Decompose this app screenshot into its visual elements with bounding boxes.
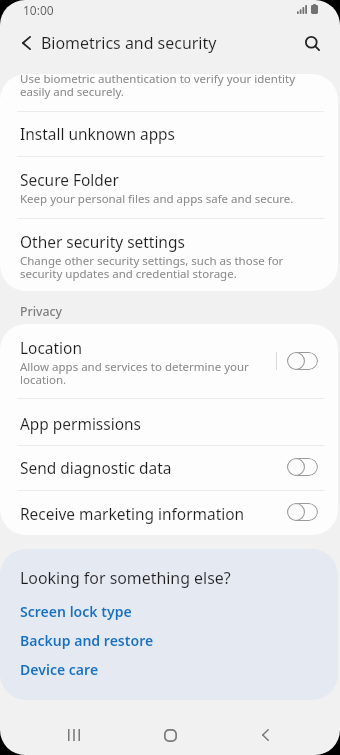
staticText: Location — [20, 337, 82, 358]
staticText: Device care — [20, 660, 99, 679]
button[interactable]: Search — [294, 25, 330, 61]
button[interactable]: Navigate up — [8, 25, 44, 61]
button[interactable] — [0, 490, 338, 535]
staticText: Biometrics and security — [41, 32, 217, 54]
staticText: Privacy — [20, 303, 63, 320]
staticText: Allow apps and services to determine you… — [20, 359, 249, 388]
button[interactable]: Home — [152, 717, 188, 753]
button[interactable]: Switch, off — [287, 503, 318, 521]
staticText: Screen lock type — [20, 602, 132, 621]
staticText: Other security settings — [20, 231, 185, 252]
button[interactable] — [0, 156, 338, 217]
button[interactable]: Screen lock type — [20, 602, 132, 621]
button[interactable]: Backup and restore — [20, 631, 154, 650]
button[interactable] — [0, 445, 338, 490]
staticText: Looking for something else? — [20, 567, 231, 589]
staticText: Backup and restore — [20, 631, 154, 650]
staticText: App permissions — [20, 413, 141, 434]
button[interactable]: Switch, off — [287, 458, 318, 476]
button[interactable] — [0, 324, 338, 398]
button[interactable]: Back — [247, 717, 283, 753]
button[interactable]: Switch, off — [287, 352, 318, 370]
staticText: Install unknown apps — [20, 123, 176, 144]
button[interactable] — [0, 111, 338, 156]
staticText: Receive marketing information — [20, 503, 245, 524]
button[interactable] — [0, 218, 338, 291]
button[interactable]: Device care — [20, 660, 99, 679]
button[interactable] — [0, 398, 338, 445]
staticText: Keep your personal files and apps safe a… — [20, 191, 294, 207]
staticText: Secure Folder — [20, 169, 119, 190]
staticText: Use biometric authentication to verify y… — [20, 74, 296, 100]
staticText: Send diagnostic data — [20, 457, 172, 478]
staticText: Change other security settings, such as … — [20, 253, 284, 282]
staticText: 10:00 — [23, 2, 54, 18]
button[interactable]: Recent apps — [56, 717, 92, 753]
